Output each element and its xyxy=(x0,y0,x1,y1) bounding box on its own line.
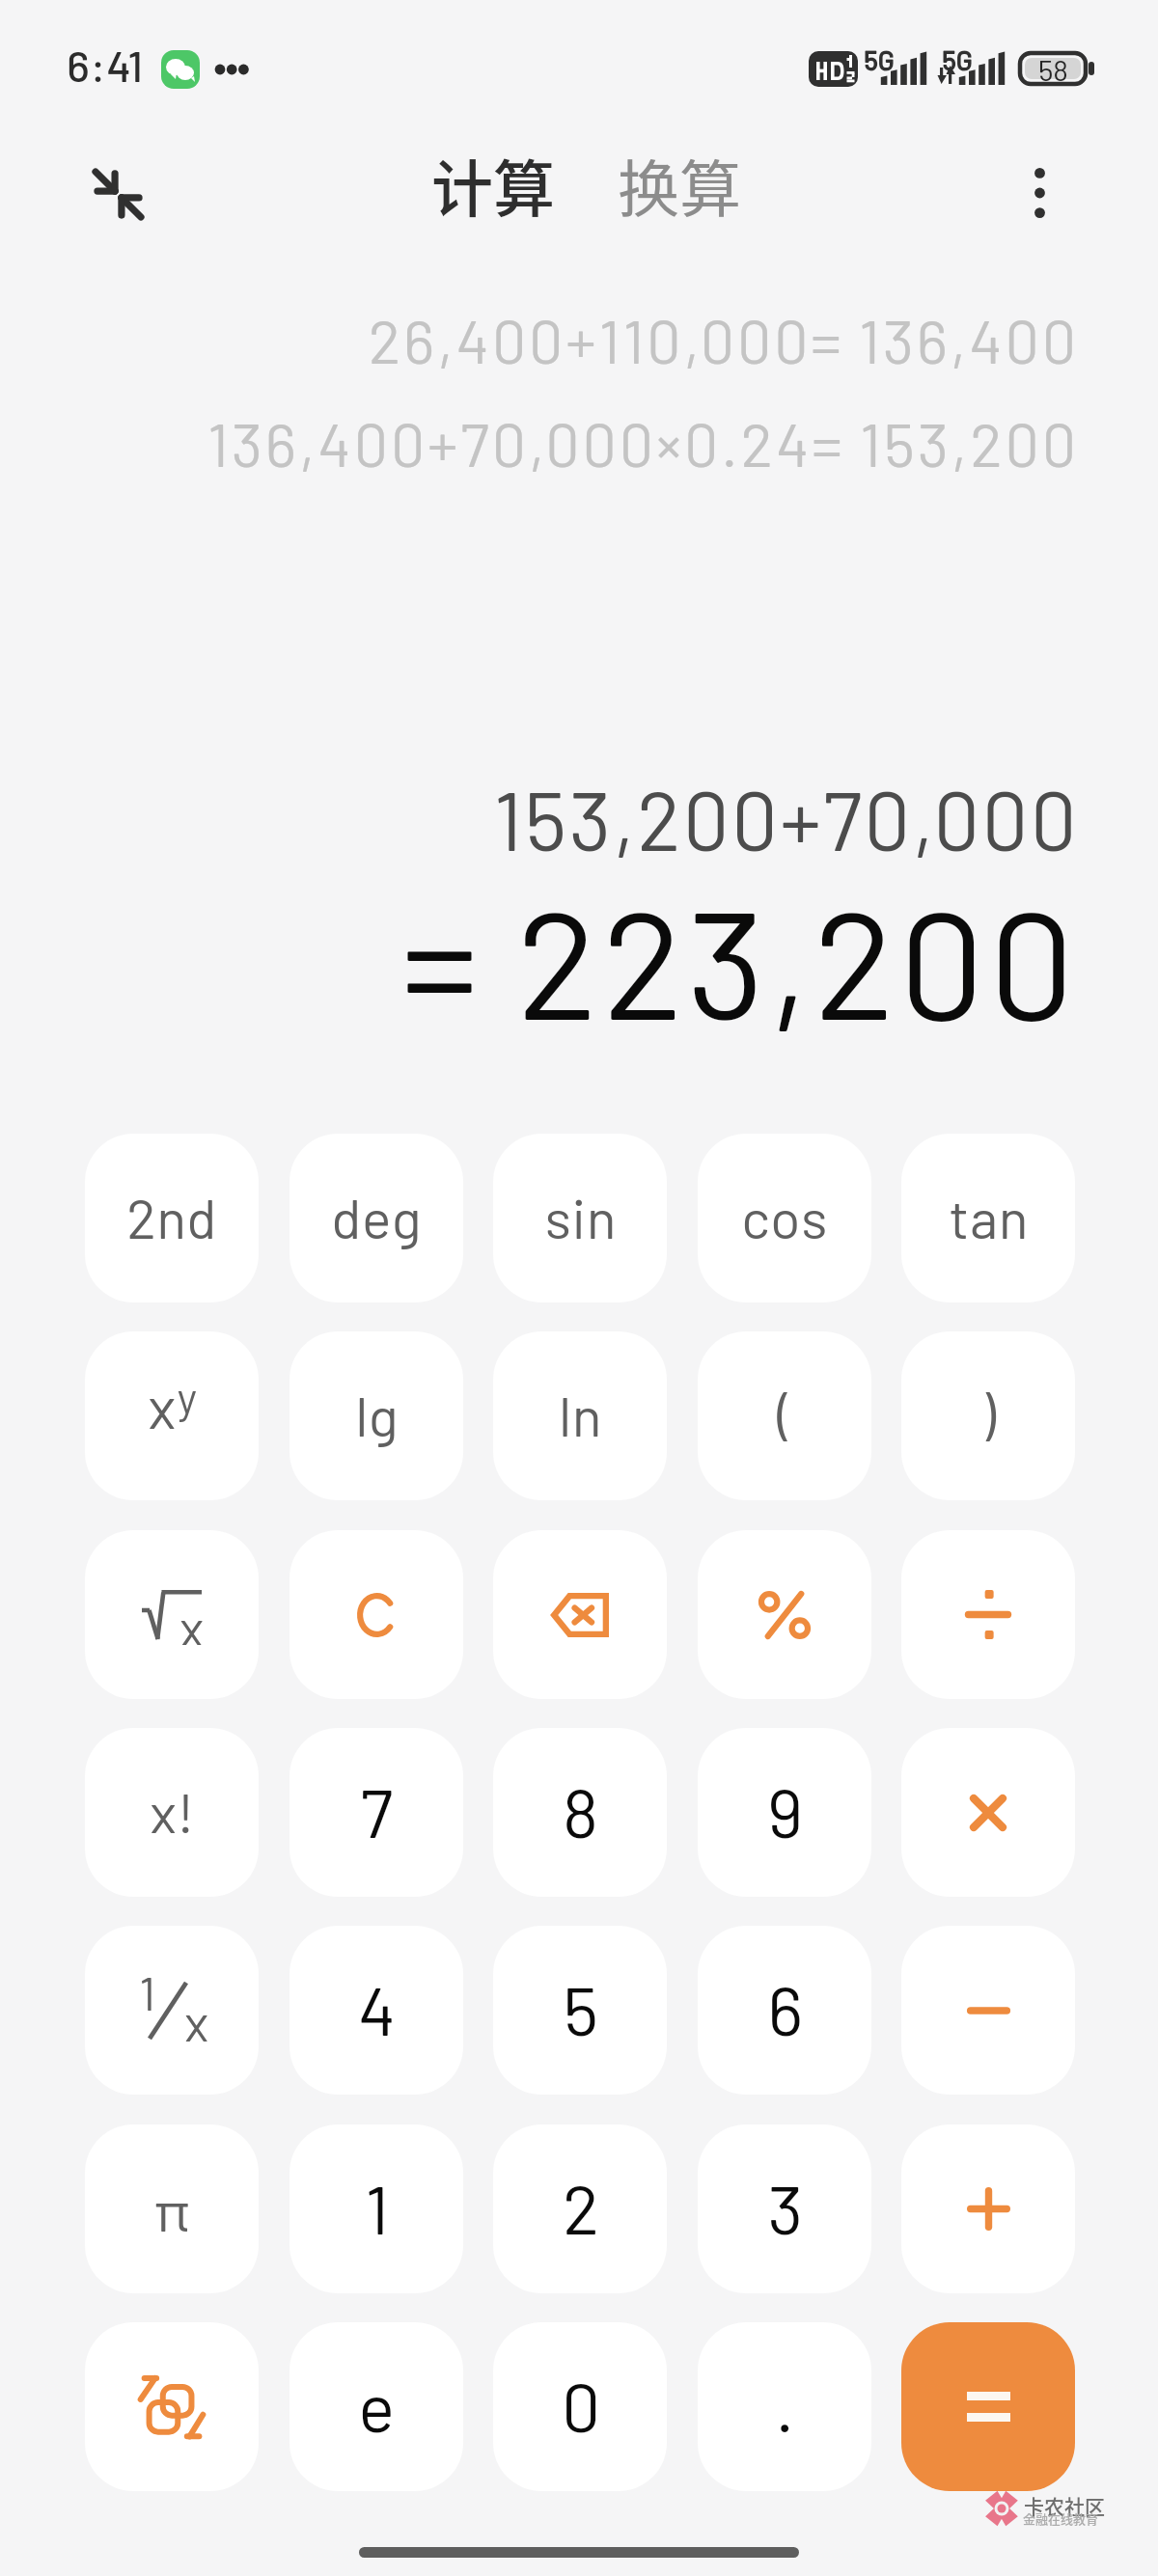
staticText: y xyxy=(177,1371,197,1422)
staticText: 7 xyxy=(360,1769,393,1851)
button[interactable]: tan xyxy=(901,1134,1075,1302)
button[interactable]: 4 xyxy=(289,1926,463,2095)
staticText: ) xyxy=(980,1379,996,1447)
button[interactable]: sin xyxy=(493,1134,667,1302)
staticText: 4 xyxy=(357,1967,396,2049)
button[interactable]: Percent xyxy=(698,1530,871,1699)
staticText: 金融在线教育 xyxy=(1023,2509,1099,2528)
button[interactable]: ln xyxy=(493,1331,667,1500)
button[interactable]: . xyxy=(698,2322,871,2491)
button[interactable]: 计算 xyxy=(414,126,572,243)
button[interactable]: 7 xyxy=(289,1728,463,1897)
staticText: . xyxy=(775,2365,794,2446)
staticText: 1 xyxy=(365,2166,389,2248)
button[interactable]: More options xyxy=(998,151,1081,234)
staticText: x xyxy=(184,1991,208,2051)
button[interactable]: Reciprocal xyxy=(85,1926,259,2095)
staticText: 8 xyxy=(563,1769,598,1851)
button[interactable]: Collapse xyxy=(76,152,159,235)
staticText: x xyxy=(179,1597,204,1645)
button[interactable]: 8 xyxy=(493,1728,667,1897)
button[interactable]: e xyxy=(289,2322,463,2491)
staticText: lg xyxy=(355,1382,399,1447)
button[interactable]: 0 xyxy=(493,2322,667,2491)
button[interactable]: 6 xyxy=(698,1926,871,2095)
staticText: cos xyxy=(741,1184,828,1249)
button[interactable]: ( xyxy=(698,1331,871,1500)
button[interactable]: Multiply xyxy=(901,1728,1075,1897)
staticText: deg xyxy=(331,1184,422,1249)
staticText: 换算 xyxy=(618,140,741,230)
button[interactable]: 2nd xyxy=(85,1134,259,1302)
staticText: e xyxy=(358,2364,395,2446)
staticText: 2nd xyxy=(126,1184,217,1249)
staticText: 卡农社区 xyxy=(1024,2491,1105,2520)
button[interactable]: 5 xyxy=(493,1926,667,2095)
button[interactable]: Minus xyxy=(901,1926,1075,2095)
button[interactable]: Plus xyxy=(901,2124,1075,2293)
staticText: 3 xyxy=(767,2166,803,2248)
staticText: tan xyxy=(949,1184,1029,1249)
staticText: π xyxy=(153,2176,190,2243)
button[interactable]: Equals xyxy=(901,2322,1075,2491)
button[interactable]: Clear xyxy=(289,1530,463,1699)
staticText: 计算 xyxy=(431,140,555,230)
button[interactable]: Pi xyxy=(85,2124,259,2293)
staticText: 5 xyxy=(563,1967,598,2049)
staticText: 58 xyxy=(1037,52,1068,87)
button[interactable]: 换算 xyxy=(600,126,758,243)
staticText: x xyxy=(148,1371,176,1440)
staticText: 153,200+70,000 xyxy=(493,769,1079,867)
button[interactable]: Backspace xyxy=(493,1530,667,1699)
button[interactable]: Convert xyxy=(85,2322,259,2491)
staticText: = 223,200 xyxy=(401,868,1079,1050)
staticText: 136,400+70,000×0.24= 153,200 xyxy=(207,406,1079,479)
button[interactable]: 1 xyxy=(289,2124,463,2293)
button[interactable]: Square root xyxy=(85,1530,259,1699)
staticText: ( xyxy=(777,1379,792,1447)
button[interactable]: 3 xyxy=(698,2124,871,2293)
button[interactable]: deg xyxy=(289,1134,463,1302)
button[interactable]: 9 xyxy=(698,1728,871,1897)
staticText: 5G xyxy=(864,43,895,76)
button[interactable]: ) xyxy=(901,1331,1075,1500)
staticText: 6:41 xyxy=(67,39,144,91)
button[interactable]: x to the power y xyxy=(85,1331,259,1500)
staticText: x! xyxy=(150,1778,195,1844)
button[interactable]: Factorial xyxy=(85,1728,259,1897)
staticText: 26,400+110,000= 136,400 xyxy=(368,303,1079,375)
staticText: 1 xyxy=(139,1964,155,2020)
button[interactable]: Divide xyxy=(901,1530,1075,1699)
staticText: 0 xyxy=(561,2364,600,2446)
button[interactable]: 2 xyxy=(493,2124,667,2293)
staticText: 6 xyxy=(767,1967,803,2049)
button[interactable]: cos xyxy=(698,1134,871,1302)
staticText: 9 xyxy=(767,1769,803,1851)
staticText: sin xyxy=(544,1184,617,1249)
staticText: 5G xyxy=(942,43,973,76)
staticText: ln xyxy=(558,1382,602,1447)
staticText: 2 xyxy=(562,2166,599,2248)
button[interactable]: lg xyxy=(289,1331,463,1500)
